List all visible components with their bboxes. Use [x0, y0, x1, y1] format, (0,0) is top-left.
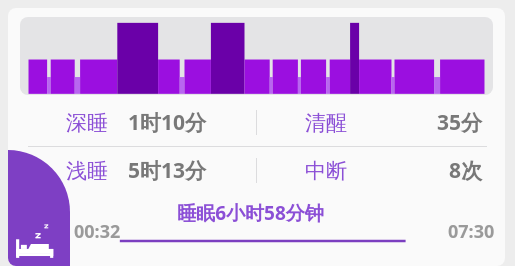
- staticText: 睡眠6小时58分钟: [177, 200, 324, 226]
- button[interactable]: 深睡: [8, 108, 256, 137]
- staticText: 00:32: [74, 219, 121, 244]
- staticText: 07:30: [448, 219, 495, 244]
- staticText: 1时10分: [128, 108, 207, 137]
- button[interactable]: Sleep stage chart: [20, 17, 493, 95]
- button[interactable]: 浅睡: [8, 156, 256, 185]
- staticText: 5时13分: [128, 156, 207, 185]
- button[interactable]: 中断: [257, 156, 505, 185]
- button[interactable]: 清醒: [257, 108, 505, 137]
- staticText: 清醒: [305, 110, 347, 136]
- staticText: 中断: [305, 158, 347, 184]
- staticText: 浅睡: [66, 158, 108, 184]
- staticText: 8次: [449, 156, 483, 185]
- button[interactable]: Sleep stage chart: [8, 8, 505, 266]
- staticText: 深睡: [66, 110, 108, 136]
- staticText: 35分: [437, 108, 483, 137]
- button[interactable]: Sleep: [8, 212, 70, 266]
